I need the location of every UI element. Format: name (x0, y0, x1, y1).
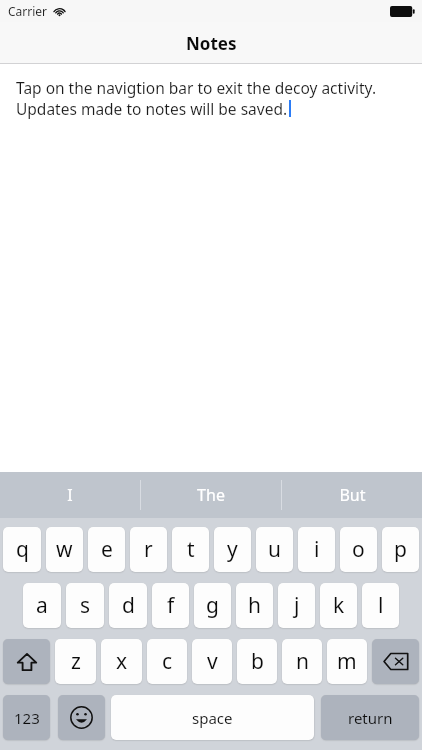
staticText: i (314, 535, 320, 564)
staticText: k (333, 591, 345, 620)
staticText: l (378, 591, 384, 620)
button[interactable]: q (3, 527, 41, 572)
staticText: I (67, 484, 73, 506)
staticText: d (122, 591, 135, 620)
staticText: w (56, 535, 73, 564)
staticText: x (116, 647, 128, 676)
staticText: c (162, 647, 173, 676)
staticText: s (80, 591, 91, 620)
button[interactable]: The (141, 472, 281, 518)
staticText: q (16, 535, 29, 564)
button[interactable]: b (237, 639, 277, 684)
button[interactable]: e (88, 527, 125, 572)
staticText: Notes (186, 32, 237, 55)
staticText: Tap on the navigtion bar to exit the dec… (16, 77, 377, 98)
button[interactable]: h (236, 583, 273, 628)
button[interactable]: l (362, 583, 399, 628)
staticText: g (206, 591, 219, 620)
staticText: y (227, 535, 238, 564)
button[interactable]: 123 (3, 695, 50, 740)
button[interactable]: v (192, 639, 232, 684)
staticText: But (339, 484, 366, 506)
staticText: p (394, 535, 407, 564)
button[interactable]: I (0, 472, 140, 518)
button[interactable]: o (340, 527, 377, 572)
button[interactable]: j (278, 583, 315, 628)
button[interactable]: space (111, 695, 314, 740)
button[interactable]: r (130, 527, 167, 572)
button[interactable]: return (321, 695, 419, 740)
staticText: o (352, 535, 365, 564)
button[interactable]: Emoji (58, 695, 105, 740)
button[interactable]: y (214, 527, 251, 572)
staticText: space (192, 708, 233, 728)
button[interactable]: But (282, 472, 422, 518)
button[interactable]: n (282, 639, 322, 684)
staticText: 123 (14, 708, 40, 728)
staticText: e (101, 535, 113, 564)
staticText: j (294, 591, 300, 620)
staticText: t (187, 535, 195, 564)
staticText: r (144, 535, 153, 564)
button[interactable]: c (147, 639, 187, 684)
button[interactable]: x (101, 639, 142, 684)
staticText: h (248, 591, 261, 620)
button[interactable]: p (382, 527, 419, 572)
button[interactable]: i (298, 527, 335, 572)
button[interactable]: g (194, 583, 231, 628)
button[interactable]: t (172, 527, 209, 572)
button[interactable]: k (320, 583, 357, 628)
button[interactable]: Backspace (372, 639, 419, 684)
button[interactable]: z (55, 639, 96, 684)
staticText: The (197, 484, 225, 506)
button[interactable]: s (66, 583, 104, 628)
staticText: Updates made to notes will be saved. (16, 98, 288, 119)
button[interactable]: f (152, 583, 189, 628)
staticText: b (251, 647, 264, 676)
button[interactable]: w (46, 527, 83, 572)
staticText: m (337, 647, 357, 676)
staticText: u (268, 535, 281, 564)
button[interactable]: Shift (3, 639, 50, 684)
button[interactable]: a (23, 583, 61, 628)
staticText: a (36, 591, 48, 620)
button[interactable]: m (327, 639, 367, 684)
staticText: n (296, 647, 309, 676)
staticText: f (167, 591, 175, 620)
staticText: Carrier (8, 3, 48, 19)
button[interactable]: u (256, 527, 293, 572)
button[interactable]: d (109, 583, 147, 628)
staticText: z (71, 647, 81, 676)
staticText: return (348, 708, 393, 728)
staticText: v (207, 647, 218, 676)
